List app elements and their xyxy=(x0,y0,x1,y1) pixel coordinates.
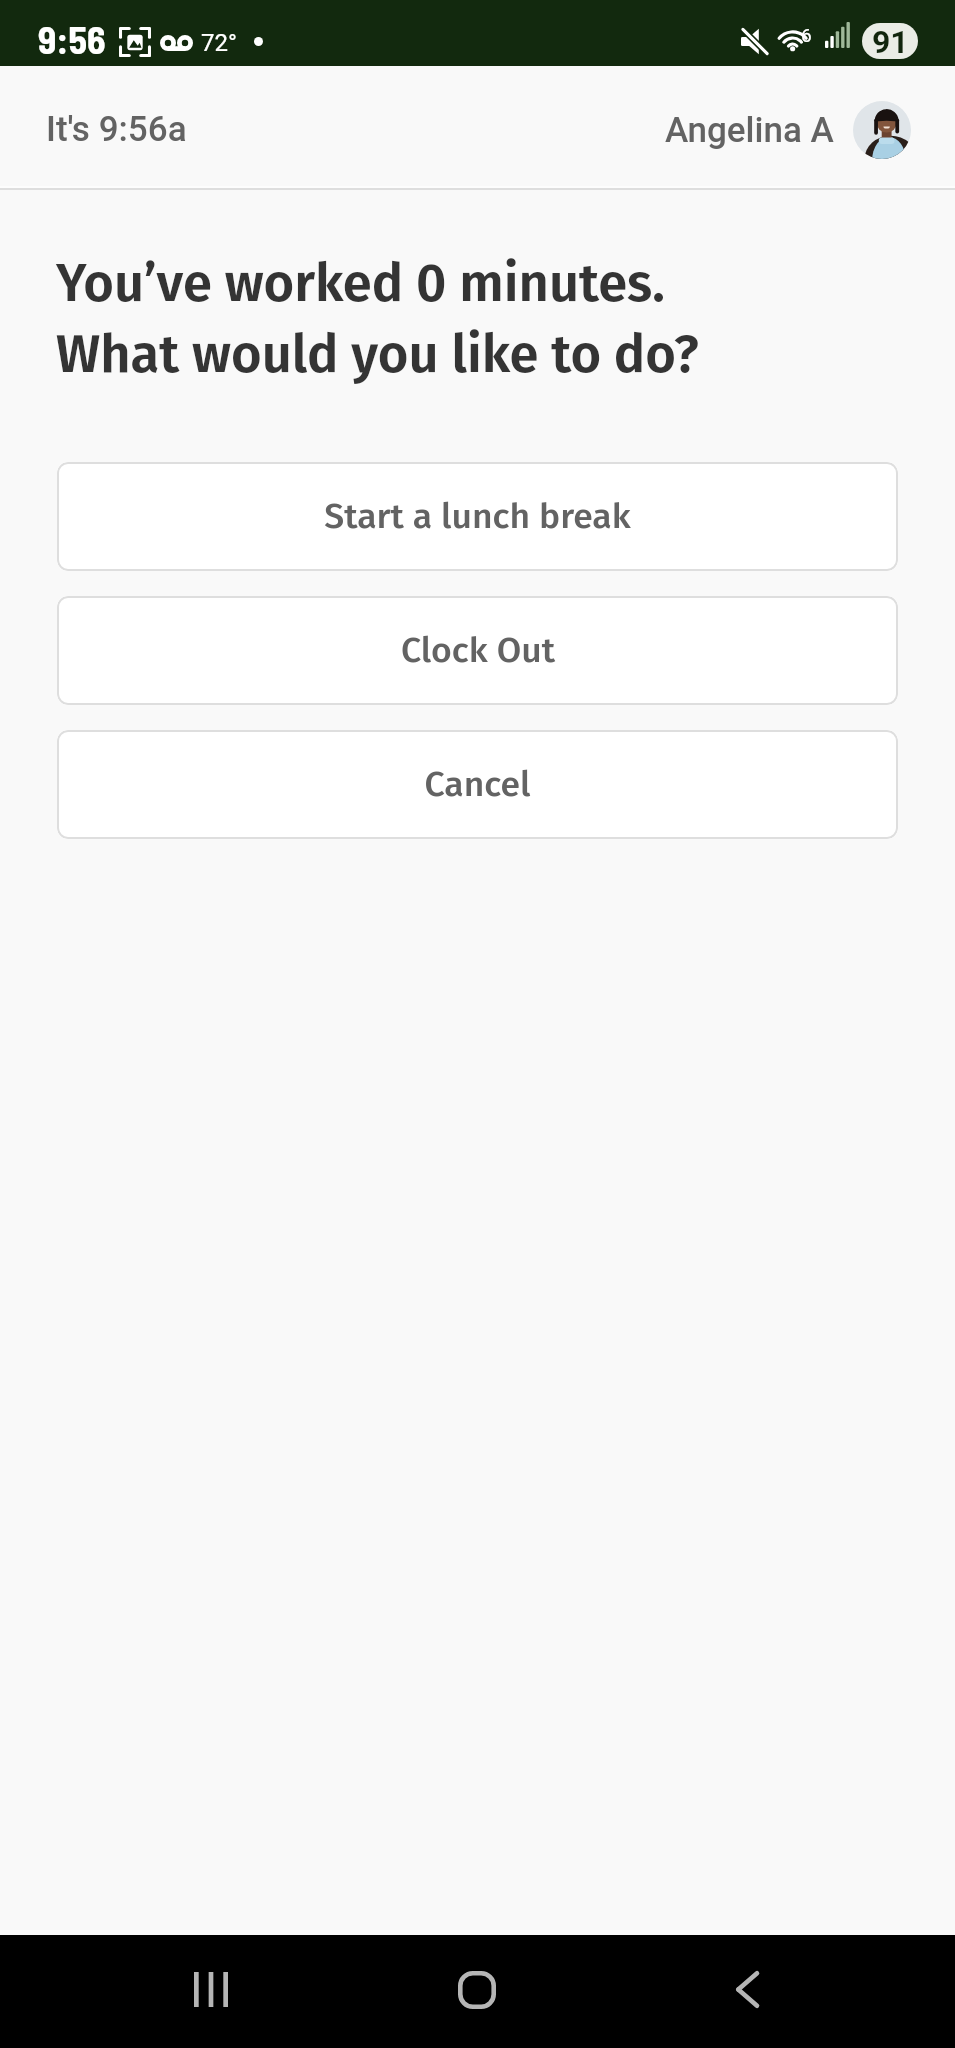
staticText: It's 9:56a xyxy=(46,109,187,150)
staticText: 6 xyxy=(801,24,812,46)
staticText: 91 xyxy=(872,23,909,59)
staticText: Start a lunch break xyxy=(324,495,631,538)
staticText: 9:56 xyxy=(38,16,106,62)
other: Profile photo xyxy=(853,101,911,159)
button[interactable]: Start a lunch break xyxy=(57,462,898,571)
staticText: Cancel xyxy=(424,763,531,806)
staticText: 72° xyxy=(201,29,237,57)
button[interactable]: Recent apps xyxy=(155,1935,267,2048)
button[interactable]: Angelina A xyxy=(665,101,911,159)
button[interactable]: Home xyxy=(421,1935,533,2048)
staticText: You’ve worked 0 minutes. What would you … xyxy=(56,252,699,385)
staticText: Angelina A xyxy=(665,110,834,151)
staticText: Clock Out xyxy=(401,629,555,672)
button[interactable]: Clock Out xyxy=(57,596,898,705)
button[interactable]: Cancel xyxy=(57,730,898,839)
button[interactable]: Back xyxy=(690,1935,802,2048)
